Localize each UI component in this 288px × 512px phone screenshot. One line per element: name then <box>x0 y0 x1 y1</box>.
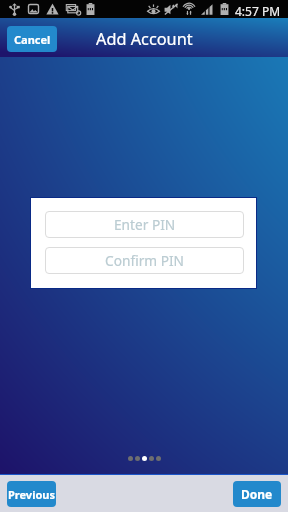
staticText: Add Account <box>96 28 193 50</box>
button[interactable]: Done <box>233 481 281 507</box>
staticText: Previous <box>8 487 55 502</box>
staticText: 4:57 PM <box>235 3 281 19</box>
button[interactable]: Previous <box>7 481 56 507</box>
staticText: Done <box>241 486 273 502</box>
button[interactable]: Cancel <box>7 26 57 52</box>
staticText: Cancel <box>14 32 51 47</box>
button[interactable]: Enter PIN <box>45 211 244 238</box>
staticText: Confirm PIN <box>105 251 184 270</box>
staticText: Enter PIN <box>114 215 176 234</box>
button[interactable]: Confirm PIN <box>45 247 244 274</box>
